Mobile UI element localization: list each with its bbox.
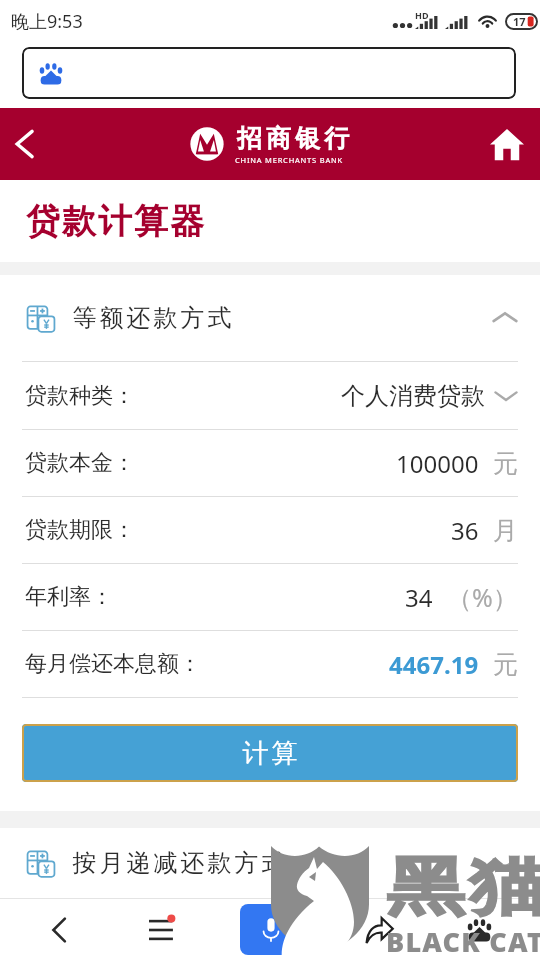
button[interactable]: 贷款期限： — [25, 497, 518, 563]
button[interactable]: 等额还款方式 — [0, 275, 540, 361]
button[interactable]: 每月偿还本息额： — [25, 631, 518, 697]
button[interactable]: Baidu — [432, 899, 540, 960]
staticText: 等额还款方式 — [71, 303, 233, 333]
button[interactable]: Share — [324, 899, 432, 960]
staticText: 年利率： — [25, 583, 113, 611]
button[interactable]: Voice search — [216, 899, 324, 960]
staticText: CHINA MERCHANTS BANK — [235, 155, 343, 165]
staticText: 34 — [405, 581, 433, 614]
staticText: 贷款本金： — [25, 449, 135, 477]
button[interactable]: 贷款种类： — [25, 362, 518, 429]
staticText: 每月偿还本息额： — [25, 650, 201, 678]
staticText: 4467.19 — [389, 648, 479, 681]
staticText: 计算 — [241, 737, 299, 770]
staticText: 贷款期限： — [25, 516, 135, 544]
button[interactable]: Home — [481, 118, 533, 170]
staticText: 个人消费贷款 — [341, 381, 485, 411]
button[interactable]: 年利率： — [25, 564, 518, 630]
button[interactable]: Search — [22, 47, 516, 99]
staticText: 按月递减还款方式 — [71, 848, 287, 878]
staticText: （%） — [447, 580, 518, 614]
staticText: BLACK CAT — [386, 923, 540, 960]
button[interactable]: 贷款本金： — [25, 430, 518, 496]
staticText: 元 — [493, 649, 518, 680]
staticText: HD — [415, 9, 429, 21]
button[interactable]: Back — [0, 120, 48, 168]
staticText: 36 — [451, 514, 479, 547]
button[interactable]: 计算 — [22, 724, 518, 782]
staticText: 贷款计算器 — [25, 200, 205, 243]
staticText: 17 — [513, 14, 526, 29]
staticText: 招商银行 — [235, 123, 351, 154]
staticText: 100000 — [396, 447, 479, 480]
button[interactable]: 按月递减还款方式 — [0, 828, 540, 898]
staticText: 贷款种类： — [25, 382, 135, 410]
staticText: 月 — [493, 515, 518, 546]
staticText: 元 — [493, 448, 518, 479]
button[interactable]: Back — [0, 899, 108, 960]
button[interactable]: Menu — [108, 899, 216, 960]
staticText: 黑猫 — [384, 848, 540, 926]
staticText: 晚上9:53 — [11, 9, 83, 34]
